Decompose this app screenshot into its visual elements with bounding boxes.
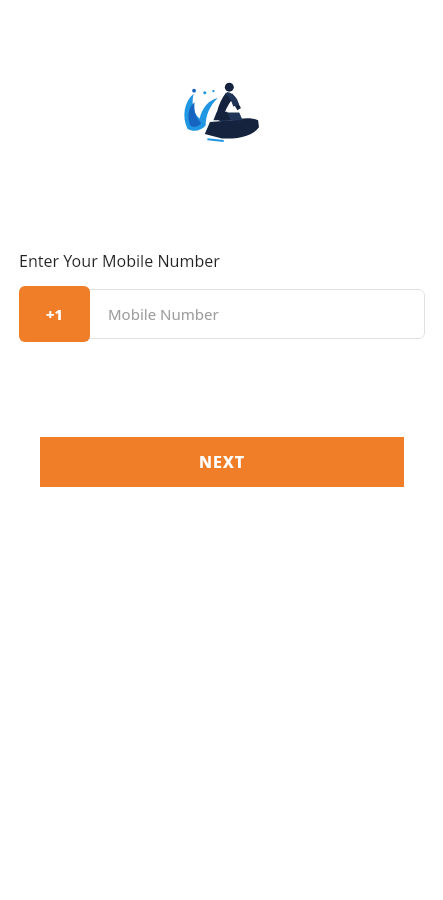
staticText: Mobile Number bbox=[108, 304, 219, 324]
button[interactable]: +1 bbox=[19, 286, 90, 342]
staticText: Enter Your Mobile Number bbox=[19, 250, 220, 272]
button[interactable]: Mobile Number bbox=[74, 289, 425, 339]
staticText: +1 bbox=[46, 304, 64, 324]
staticText: NEXT bbox=[199, 451, 245, 473]
button[interactable]: NEXT bbox=[40, 437, 404, 487]
